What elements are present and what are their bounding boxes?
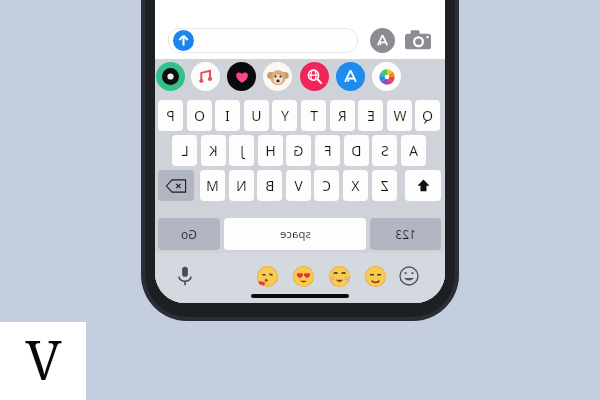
button[interactable]: Camera [405,29,431,51]
staticText: X [351,176,360,195]
button[interactable]: H [258,135,283,166]
button[interactable]: K [201,135,226,166]
button[interactable]: Dictation [177,266,193,286]
staticText: space [279,226,311,242]
button[interactable]: B [257,170,282,201]
button[interactable]: N [229,170,254,201]
button[interactable]: Kissing emoji [257,266,278,287]
button[interactable]: Smiling emoji [329,266,350,287]
button[interactable]: Send [173,30,194,51]
staticText: J [240,141,244,160]
staticText: Go [181,226,197,242]
button[interactable]: E [358,100,383,131]
button[interactable]: Heart eyes emoji [293,266,314,287]
button[interactable]: space [224,218,366,250]
staticText: U [251,106,262,125]
button[interactable]: Z [372,170,397,201]
button[interactable]: G [286,135,311,166]
button[interactable]: App Store [370,28,395,53]
button[interactable]: A [401,135,426,166]
staticText: I [225,106,230,125]
button[interactable]: Fitness [227,62,256,91]
button[interactable]: R [330,100,355,131]
button[interactable]: Go [158,218,220,250]
button[interactable]: App Store [336,62,365,91]
button[interactable]: I [215,100,240,131]
button[interactable]: F [315,135,340,166]
button[interactable]: X [343,170,368,201]
button[interactable]: D [344,135,369,166]
button[interactable]: P [158,100,183,131]
button[interactable]: Delete [158,170,194,201]
button[interactable]: S [372,135,397,166]
staticText: D [351,141,362,160]
button[interactable]: U [244,100,269,131]
staticText: T [310,106,318,125]
button[interactable]: Q [415,100,440,131]
staticText: S [381,141,389,160]
button[interactable]: Emoji keyboard [399,266,419,286]
button[interactable]: O [187,100,212,131]
staticText: C [322,176,331,195]
button[interactable]: C [314,170,339,201]
button[interactable]: Photos [372,62,401,91]
staticText: E [367,106,375,125]
staticText: B [265,176,275,195]
staticText: L [181,141,189,160]
button[interactable]: Shift [405,170,441,201]
button[interactable]: App [156,62,185,91]
staticText: P [166,106,175,125]
button[interactable]: M [200,170,225,201]
staticText: O [194,106,205,125]
button[interactable]: Search app [300,62,329,91]
staticText: H [265,141,276,160]
button[interactable]: Y [272,100,297,131]
button[interactable]: Relieved emoji [365,266,386,287]
staticText: Y [281,106,289,125]
staticText: A [409,141,418,160]
button[interactable]: J [229,135,254,166]
button[interactable]: Memoji [263,62,292,91]
staticText: G [293,141,304,160]
staticText: W [393,106,407,125]
button[interactable]: Music [191,62,220,91]
button[interactable]: W [387,100,412,131]
staticText: Z [380,176,389,195]
button[interactable] [168,28,358,53]
staticText: K [209,141,218,160]
staticText: F [324,141,332,160]
staticText: M [206,176,219,195]
button[interactable]: T [301,100,326,131]
staticText: 123 [395,226,416,242]
staticText: V [25,322,62,396]
button[interactable]: L [172,135,197,166]
button[interactable]: V [286,170,311,201]
staticText: R [338,106,347,125]
button[interactable]: 123 [370,218,441,250]
staticText: Q [422,106,433,125]
staticText: N [236,176,247,195]
staticText: V [294,176,303,195]
